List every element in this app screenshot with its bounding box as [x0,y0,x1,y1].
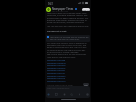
staticText: Type your message here [47,87,70,90]
button[interactable]: nwstimes.com/opin [45,64,91,67]
button[interactable]: Add attachment [47,93,50,96]
button[interactable]: nwstimes.com/wthr [45,75,91,78]
staticText: nwstimes.com/wrld [47,62,66,65]
button[interactable]: New here? Ask anything and our assistant… [46,35,90,42]
button[interactable]: nwstimes.com/scie [45,77,91,80]
staticText: to respond within one single business da… [47,49,86,52]
staticText: nwstimes.com/scie [47,77,65,80]
staticText: editorial team works around the clock to [47,19,87,22]
staticText: nwstimes.com/cult [47,72,65,75]
staticText: Sign in [83,9,89,11]
staticText: nwstimes.com/busi [47,67,66,70]
staticText: No help? Let's chat! [47,30,67,33]
staticText: nwstimes.com/wthr [47,75,66,78]
button[interactable]: nwstimes.com/wrld [45,62,91,65]
staticText: email is monitored every day. We try to … [47,46,87,49]
staticText: Newspaper Times [52,7,74,10]
button[interactable]: Send [86,93,89,96]
staticText: analysis with in-depth feature writing. … [47,17,89,20]
button[interactable]: Microphone [78,93,81,96]
staticText: Here you'll find our complete news story [47,12,87,15]
staticText: Here are our top direction links: [47,56,76,59]
button[interactable]: nwstimes.com/new [45,59,91,62]
button[interactable]: nwstimes.com/busi [45,67,91,70]
staticText: Was this helpful? Let us know. [47,84,73,87]
staticText: 9:41 [48,2,53,5]
button[interactable]: App logo [46,7,51,12]
staticText: of receiving your original message. [47,51,79,54]
staticText: coverage, including breaking reports and [47,14,88,17]
button[interactable]: nwstimes.com/cult [45,72,91,75]
button[interactable]: nwstimes.com/arch [45,80,91,83]
staticText: Our subscriber support team is available… [47,42,87,45]
button[interactable]: Copy [83,83,89,86]
staticText: nwstimes.com/sprt [47,69,66,72]
staticText: Copy [84,84,88,86]
staticText: You can also reach our newsroom directly… [47,25,89,28]
button[interactable]: Image [55,93,58,96]
button[interactable]: nwstimes.com/sprt [45,69,91,72]
staticText: weekdays from 9am to 6pm local time, and [47,44,87,47]
staticText: nwstimes.com/new [47,59,66,62]
button[interactable]: Search [70,93,73,96]
staticText: Sign in to save chats [52,10,69,12]
staticText: nwstimes.com/arch [47,80,66,83]
staticText: bring you accurate, verified reporting. [47,21,85,24]
staticText: nwstimes.com/opin [47,64,66,67]
staticText: New here? Ask anything and our assistant… [50,36,89,40]
button[interactable]: Tools [63,93,66,96]
staticText: Feel free to explore our full site map b… [47,53,87,56]
button[interactable]: Sign in [82,8,90,11]
